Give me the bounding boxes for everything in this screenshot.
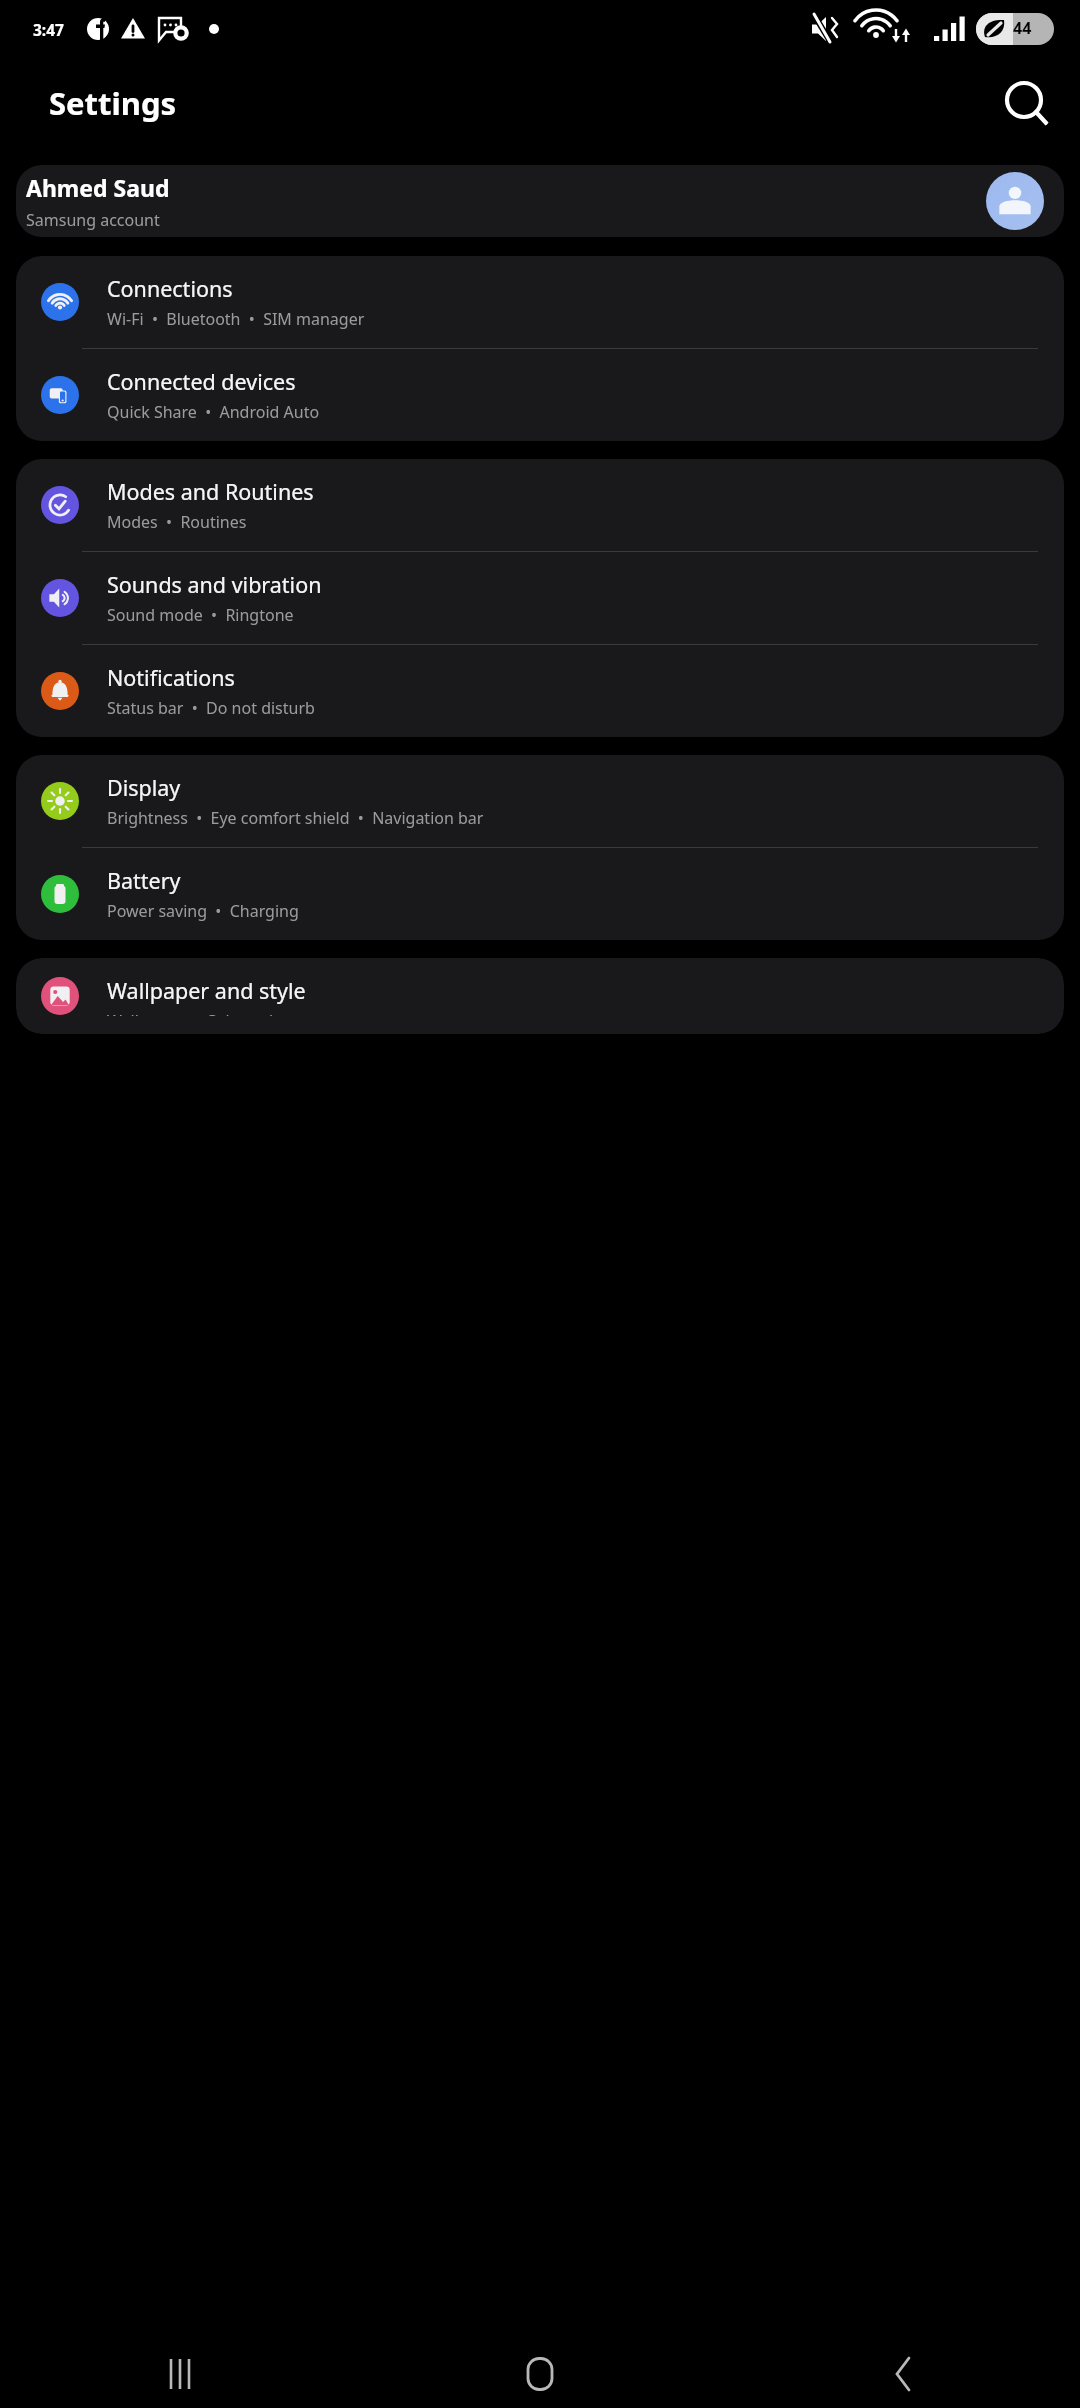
button[interactable]: Back	[720, 2340, 1080, 2408]
staticText: Notifications	[107, 663, 235, 692]
staticText: Ahmed Saud	[26, 172, 170, 203]
staticText: Wi-Fi • Bluetooth • SIM manager	[107, 308, 365, 330]
staticText: Samsung account	[26, 209, 160, 231]
button[interactable]: Recents	[0, 2340, 360, 2408]
staticText: 44	[1013, 17, 1032, 39]
button[interactable]: Search	[996, 73, 1056, 133]
staticText: Modes • Routines	[107, 511, 247, 533]
staticText: 3:47	[33, 19, 64, 40]
staticText: Power saving • Charging	[107, 900, 299, 922]
button[interactable]: Sounds and vibration	[16, 552, 1064, 644]
button[interactable]: Battery	[16, 848, 1064, 940]
button[interactable]: Connected devices	[16, 349, 1064, 441]
staticText: Battery	[107, 866, 181, 895]
staticText: Sounds and vibration	[107, 570, 322, 599]
staticText: Wallpaper • Color palette	[107, 1010, 303, 1016]
button[interactable]: Wallpaper and style	[16, 958, 1064, 1034]
staticText: Display	[107, 773, 181, 802]
staticText: Sound mode • Ringtone	[107, 604, 294, 626]
button[interactable]: Notifications	[16, 645, 1064, 737]
staticText: Modes and Routines	[107, 477, 314, 506]
staticText: Status bar • Do not disturb	[107, 697, 315, 719]
button[interactable]: Connections	[16, 256, 1064, 348]
button[interactable]: Modes and Routines	[16, 459, 1064, 551]
staticText: Settings	[49, 82, 177, 124]
staticText: Brightness • Eye comfort shield • Naviga…	[107, 807, 484, 829]
button[interactable]: Ahmed Saud	[16, 165, 1064, 237]
staticText: Wallpaper and style	[107, 976, 306, 1005]
button[interactable]: Display	[16, 755, 1064, 847]
staticText: Quick Share • Android Auto	[107, 401, 320, 423]
staticText: Connections	[107, 274, 233, 303]
staticText: Connected devices	[107, 367, 296, 396]
button[interactable]: Home	[360, 2340, 720, 2408]
